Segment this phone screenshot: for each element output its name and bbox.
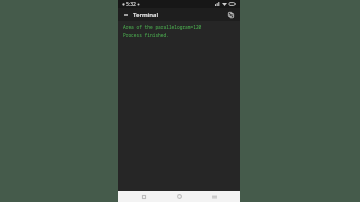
staticText: Area of the parallelogram=120 [123, 24, 202, 30]
staticText: Terminal [133, 11, 159, 19]
button[interactable]: Menu [122, 11, 130, 19]
button[interactable]: Recent apps [205, 191, 223, 202]
button[interactable]: Copy [226, 10, 236, 20]
staticText: Process finished. [123, 32, 169, 38]
button[interactable]: Back [135, 191, 153, 202]
staticText: 5:32 [126, 1, 136, 8]
button[interactable]: Home [170, 191, 188, 202]
